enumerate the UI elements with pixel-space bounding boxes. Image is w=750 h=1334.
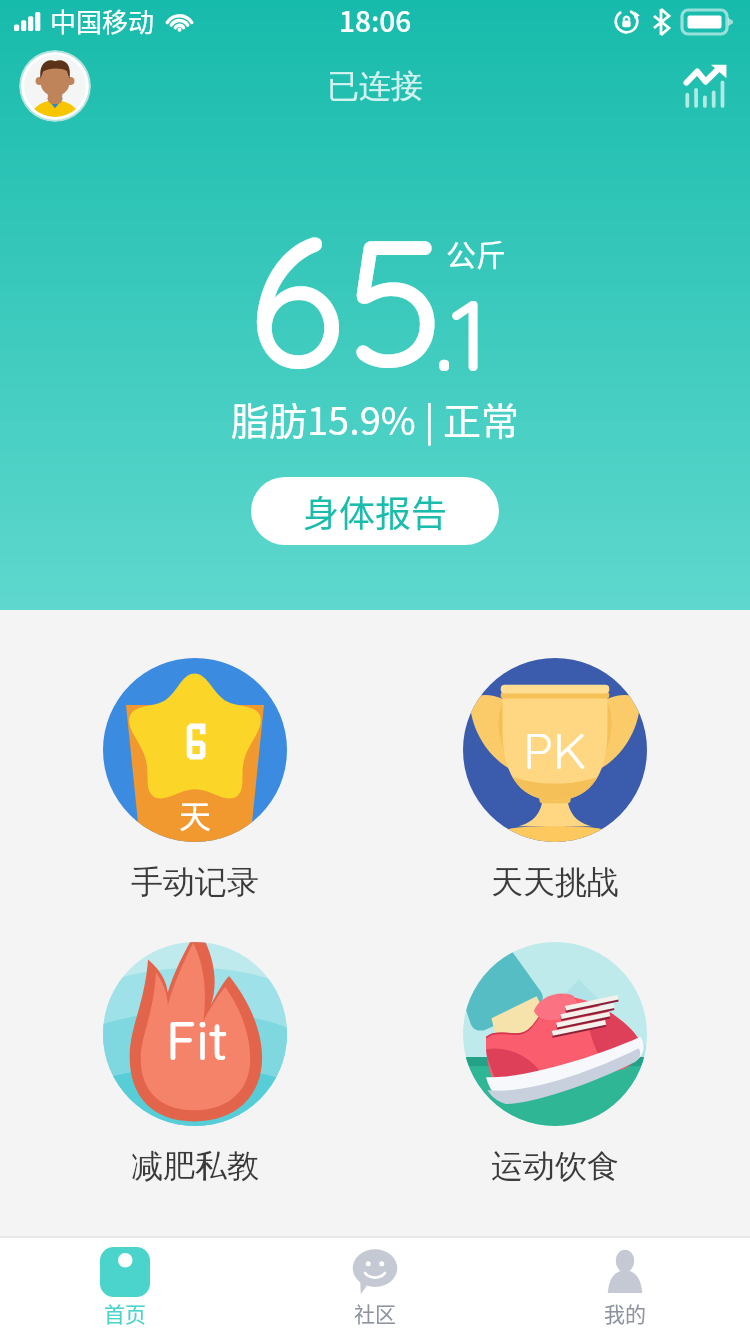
staticText: .1: [434, 271, 488, 396]
button[interactable]: PK: [445, 658, 665, 902]
button[interactable]: 身体报告: [251, 477, 499, 545]
staticText: PK: [523, 719, 587, 782]
staticText: 天: [179, 791, 212, 837]
button[interactable]: Profile: [19, 50, 91, 122]
staticText: 已连接: [327, 66, 423, 106]
staticText: 脂肪15.9% | 正常: [231, 391, 520, 446]
button[interactable]: 运动饮食: [445, 942, 665, 1186]
staticText: 天天挑战: [491, 862, 619, 902]
button[interactable]: 我的: [500, 1238, 750, 1328]
staticText: 中国移动: [50, 2, 155, 40]
staticText: 运动饮食: [491, 1146, 619, 1186]
button[interactable]: Trends: [684, 64, 728, 108]
staticText: 手动记录: [131, 862, 259, 902]
staticText: 首页: [104, 1298, 146, 1328]
button[interactable]: 首页: [0, 1238, 250, 1328]
staticText: Fit: [166, 1006, 229, 1074]
button[interactable]: 社区: [250, 1238, 500, 1328]
staticText: 身体报告: [303, 485, 448, 537]
staticText: 公斤: [446, 231, 506, 274]
staticText: 18:06: [339, 0, 412, 41]
button[interactable]: Fit: [85, 942, 305, 1186]
staticText: 我的: [604, 1298, 646, 1328]
staticText: 社区: [354, 1298, 396, 1328]
staticText: 减肥私教: [131, 1146, 259, 1186]
staticText: 65: [247, 187, 445, 412]
button[interactable]: 天: [85, 658, 305, 902]
